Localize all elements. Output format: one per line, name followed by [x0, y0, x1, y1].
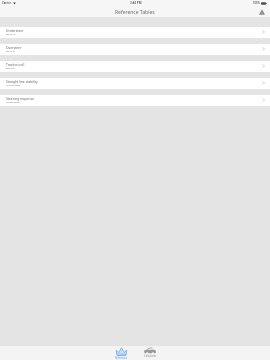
- staticText: Oversteer: [6, 45, 22, 49]
- staticText: Steering response: [6, 96, 35, 100]
- staticText: Understeer: [6, 28, 24, 32]
- staticText: Calculator: [144, 354, 157, 358]
- staticText: 3:44 PM: [130, 1, 142, 5]
- button[interactable]: Traction roll: [0, 61, 270, 72]
- button[interactable]: Calculator tab: [136, 346, 164, 360]
- staticText: Reference Tables: [115, 9, 155, 16]
- staticText: get rid of: [6, 33, 15, 36]
- staticText: get rid of: [6, 50, 15, 53]
- button[interactable]: Straight line stability: [0, 78, 270, 89]
- button[interactable]: Oversteer: [0, 44, 270, 55]
- button[interactable]: Warning: [257, 7, 266, 16]
- staticText: to make faster: [6, 101, 20, 104]
- staticText: Straight line stability: [6, 79, 38, 83]
- button[interactable]: Steering response: [0, 95, 270, 106]
- button[interactable]: Reference Tables tab: [107, 346, 135, 360]
- staticText: Carrier: [2, 1, 12, 5]
- staticText: Reference: [115, 356, 128, 360]
- staticText: 100%: [253, 1, 260, 5]
- staticText: Traction roll: [6, 62, 25, 66]
- staticText: get rid of: [6, 67, 15, 70]
- staticText: to make better: [6, 84, 20, 87]
- button[interactable]: Understeer: [0, 27, 270, 38]
